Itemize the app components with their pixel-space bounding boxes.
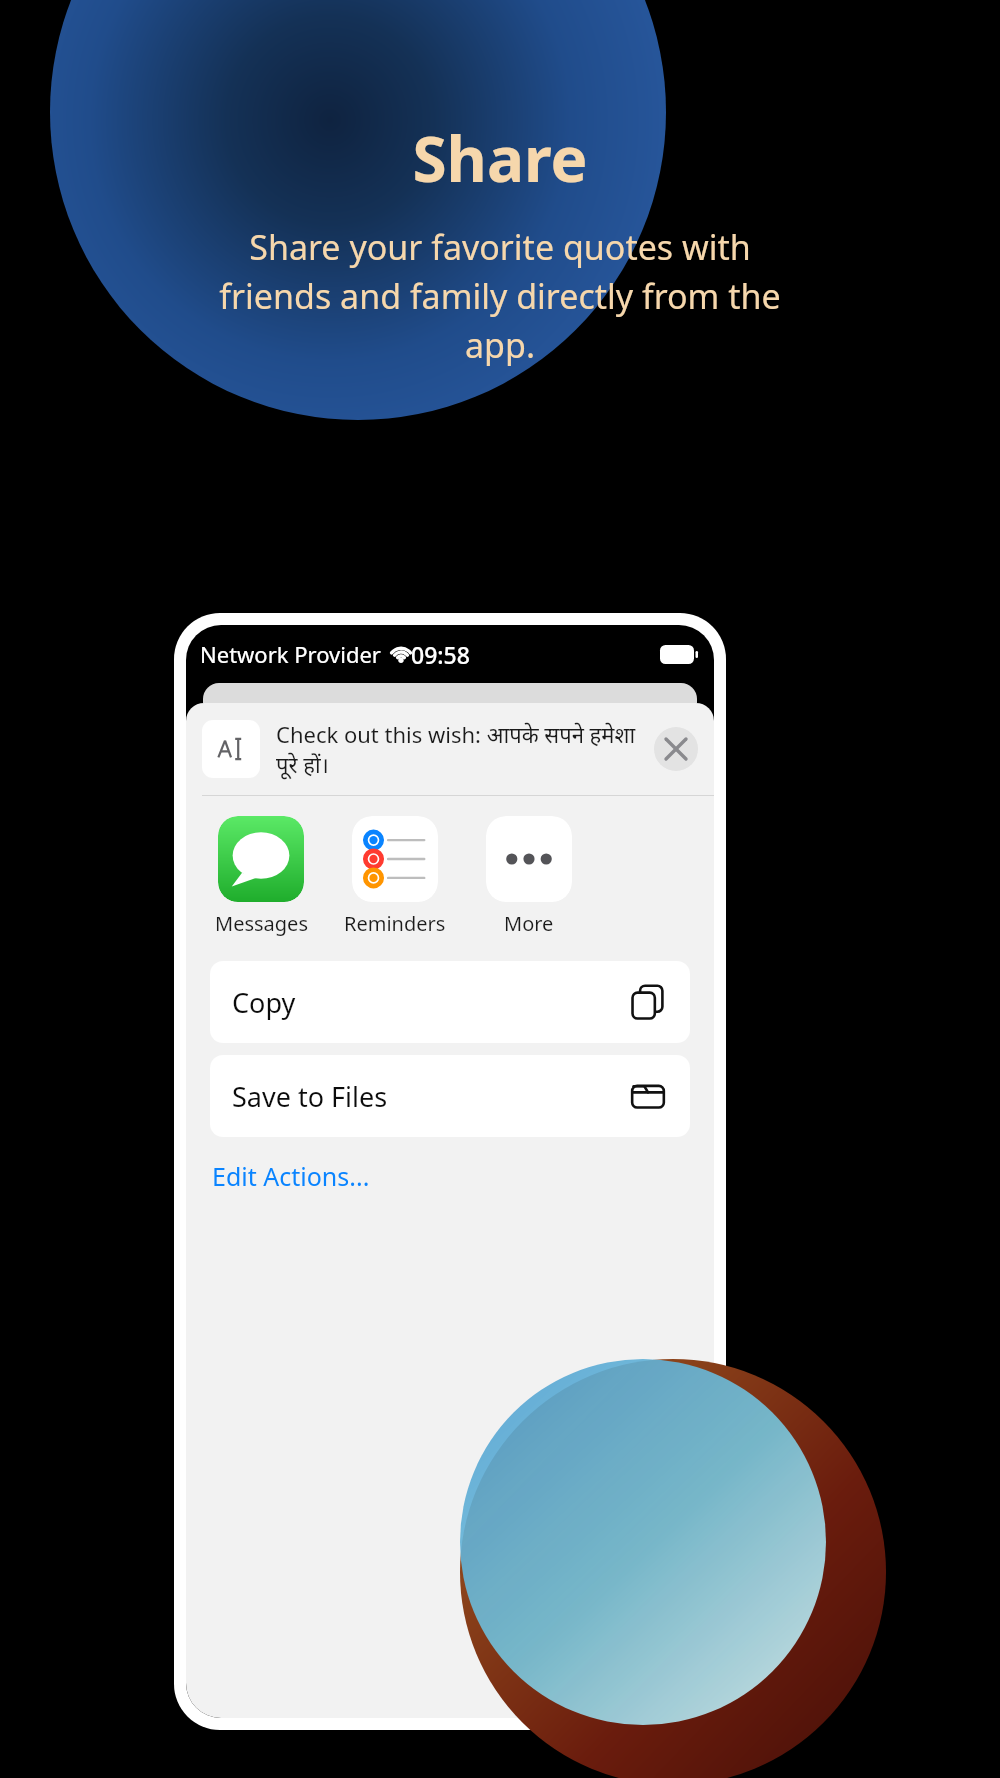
staticText: Edit Actions...	[212, 1159, 370, 1193]
button[interactable]: Messages	[208, 816, 314, 937]
staticText: More	[504, 910, 554, 937]
staticText: Check out this wish: आपके सपने हमेशा पूर…	[276, 719, 644, 779]
staticText: Share your favorite quotes with friends …	[200, 224, 800, 368]
button[interactable]: More	[476, 816, 582, 937]
button[interactable]: Reminders	[342, 816, 448, 937]
button[interactable]: Edit Actions...	[212, 1159, 370, 1193]
button[interactable]: Close	[654, 727, 698, 771]
staticText: Network Provider	[200, 639, 381, 669]
staticText: Copy	[232, 984, 628, 1021]
staticText: Messages	[215, 910, 308, 937]
staticText: Share	[412, 116, 588, 200]
staticText: 09:58	[411, 639, 470, 670]
button[interactable]: Save to Files	[210, 1055, 690, 1137]
button[interactable]: Copy	[210, 961, 690, 1043]
staticText: Save to Files	[232, 1078, 628, 1115]
staticText: Reminders	[344, 910, 446, 937]
